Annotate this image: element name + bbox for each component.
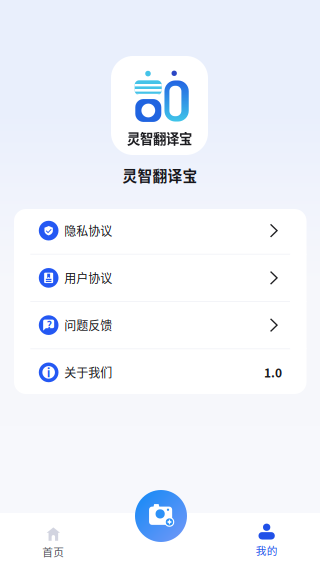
staticText: i xyxy=(47,363,51,381)
button[interactable]: i xyxy=(14,349,306,395)
staticText: 用户协议 xyxy=(64,269,112,287)
staticText: 问题反馈 xyxy=(64,316,112,334)
button[interactable]: 首页 xyxy=(0,513,107,568)
button[interactable]: Translate with camera xyxy=(135,490,187,542)
button[interactable]: ? xyxy=(14,302,306,348)
staticText: ? xyxy=(46,317,51,332)
staticText: 关于我们 xyxy=(64,364,112,381)
staticText: 1.0 xyxy=(264,364,282,381)
staticText: 灵智翻译宝 xyxy=(122,164,197,186)
staticText: 灵智翻译宝 xyxy=(127,128,192,148)
button[interactable]: Scan xyxy=(107,513,213,568)
button[interactable]: 隐私协议 xyxy=(14,207,306,254)
staticText: 我的 xyxy=(256,542,278,558)
button[interactable]: 我的 xyxy=(213,513,320,568)
staticText: 首页 xyxy=(42,544,64,559)
button[interactable]: 用户协议 xyxy=(14,255,306,301)
staticText: 隐私协议 xyxy=(64,222,112,239)
